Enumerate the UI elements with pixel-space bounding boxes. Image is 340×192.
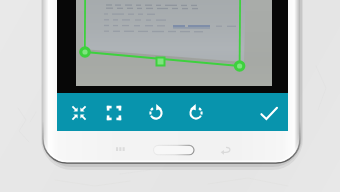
button[interactable]: Done [257,101,281,125]
button[interactable]: Rotate right [184,101,208,125]
button[interactable]: Rotate left [144,101,168,125]
button[interactable]: Shrink to fit [67,101,91,125]
button[interactable]: Expand to full size [102,101,126,125]
